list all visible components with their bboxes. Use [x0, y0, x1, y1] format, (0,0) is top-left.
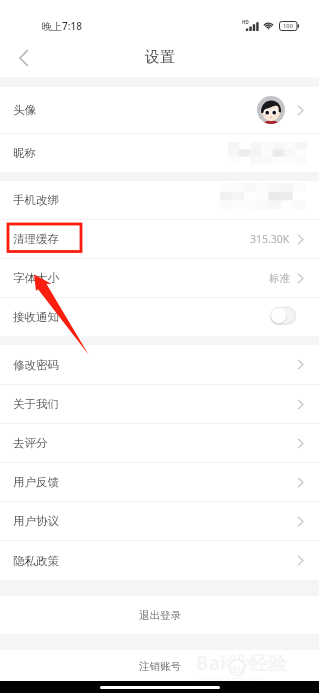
- staticText: 隐私政策: [13, 554, 59, 568]
- button[interactable]: 昵称: [0, 134, 319, 172]
- staticText: jingyan.baidu.com: [198, 673, 263, 683]
- staticText: 手机改绑: [13, 193, 59, 207]
- staticText: 315.30K: [250, 232, 290, 246]
- staticText: du: [230, 661, 245, 676]
- button[interactable]: 退出登录: [0, 596, 319, 634]
- button[interactable]: 修改密码: [0, 345, 319, 384]
- staticText: 用户协议: [13, 514, 59, 528]
- staticText: 退出登录: [139, 609, 181, 622]
- button[interactable]: 去评分: [0, 424, 319, 462]
- button[interactable]: Back: [2, 38, 44, 77]
- button[interactable]: 接收通知: [0, 298, 319, 336]
- staticText: 清理缓存: [13, 232, 59, 246]
- staticText: 设置: [145, 48, 175, 67]
- button[interactable]: 字体大小: [0, 259, 319, 297]
- staticText: Bai: [196, 650, 226, 676]
- button[interactable]: 头像: [0, 87, 319, 133]
- button[interactable]: 隐私政策: [0, 541, 319, 580]
- staticText: 修改密码: [13, 358, 59, 372]
- staticText: 关于我们: [13, 397, 59, 411]
- staticText: 字体大小: [13, 271, 59, 285]
- staticText: HD: [242, 19, 249, 25]
- button[interactable]: 注销账号: [0, 650, 319, 683]
- button[interactable]: 用户反馈: [0, 463, 319, 501]
- staticText: 100: [283, 22, 293, 30]
- button[interactable]: 关于我们: [0, 385, 319, 423]
- staticText: 晚上7:18: [42, 19, 82, 33]
- button[interactable]: 清理缓存: [0, 220, 319, 258]
- staticText: 注销账号: [139, 660, 181, 673]
- staticText: 标准: [269, 272, 290, 285]
- staticText: 头像: [13, 103, 36, 117]
- button[interactable]: Receive notifications toggle: [270, 307, 296, 324]
- staticText: 用户反馈: [13, 475, 59, 489]
- staticText: 昵称: [13, 146, 36, 160]
- staticText: 去评分: [13, 436, 48, 450]
- button[interactable]: 用户协议: [0, 502, 319, 540]
- staticText: 经验: [249, 652, 287, 676]
- staticText: 接收通知: [13, 310, 59, 324]
- button[interactable]: 手机改绑: [0, 181, 319, 219]
